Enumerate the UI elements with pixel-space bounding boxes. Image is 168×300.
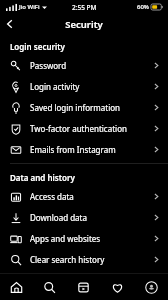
- staticText: Emails from Instagram: [30, 144, 154, 155]
- button[interactable]: Reels: [66, 274, 100, 300]
- staticText: 60%: [137, 3, 149, 11]
- button[interactable]: Home: [0, 274, 33, 300]
- staticText: Two-factor authentication: [30, 123, 154, 134]
- button[interactable]: Back: [0, 14, 20, 34]
- button[interactable]: Activity: [100, 274, 134, 300]
- button[interactable]: Clear search history: [0, 249, 168, 270]
- button[interactable]: Apps and websites: [0, 228, 168, 249]
- button[interactable]: Profile: [134, 274, 168, 300]
- button[interactable]: Password: [0, 55, 168, 76]
- staticText: Jio WiFi: [19, 3, 40, 11]
- staticText: Saved login information: [30, 102, 154, 113]
- button[interactable]: Two-factor authentication: [0, 118, 168, 139]
- staticText: Clear search history: [30, 254, 154, 265]
- staticText: Login security: [10, 41, 65, 52]
- staticText: Password: [30, 60, 154, 71]
- staticText: Data and history: [10, 172, 75, 183]
- staticText: Apps and websites: [30, 233, 154, 244]
- button[interactable]: Emails from Instagram: [0, 139, 168, 160]
- button[interactable]: Login activity: [0, 76, 168, 97]
- staticText: Login activity: [30, 81, 154, 92]
- staticText: Security: [65, 18, 103, 31]
- button[interactable]: Access data: [0, 186, 168, 207]
- staticText: 2:55 PM: [72, 3, 97, 12]
- button[interactable]: Search: [33, 274, 66, 300]
- staticText: Download data: [30, 212, 154, 223]
- staticText: Access data: [30, 191, 154, 202]
- button[interactable]: Saved login information: [0, 97, 168, 118]
- button[interactable]: Download data: [0, 207, 168, 228]
